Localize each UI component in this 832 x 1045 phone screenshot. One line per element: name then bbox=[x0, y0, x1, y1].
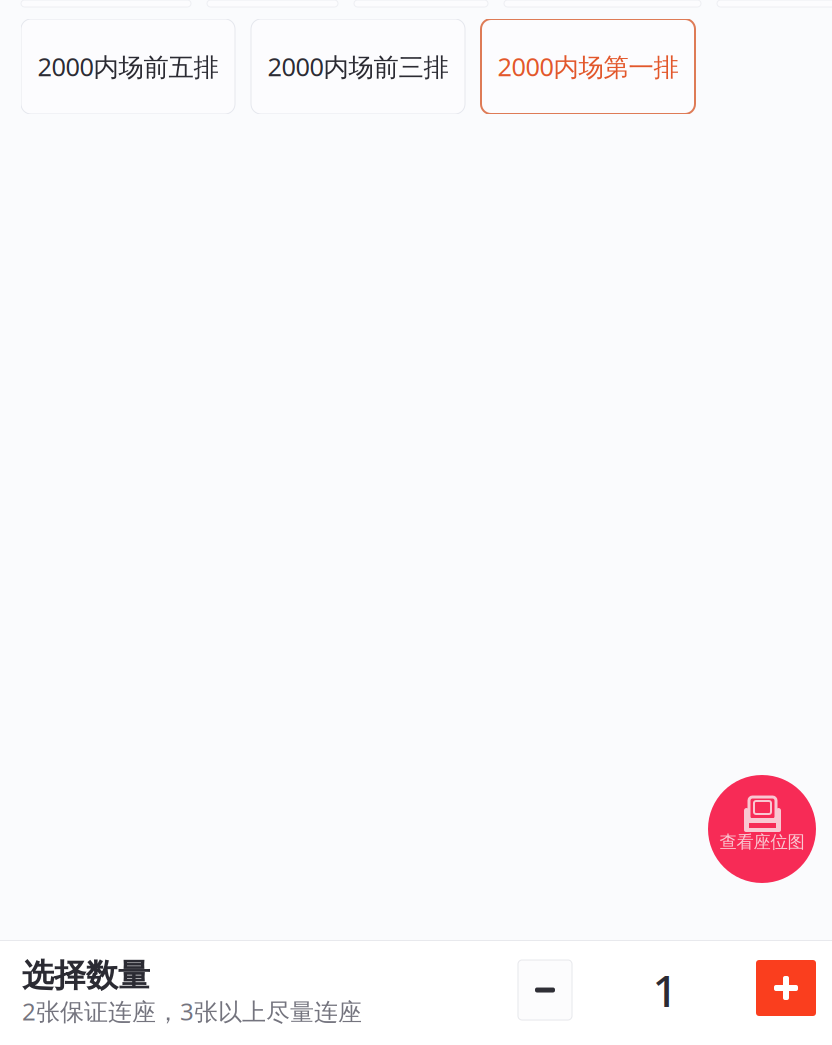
staticText: 2张保证连座，3张以上尽量连座 bbox=[22, 995, 362, 1027]
button[interactable]: 查看座位图 bbox=[708, 775, 816, 883]
button[interactable]: 减少数量 bbox=[518, 960, 572, 1020]
button[interactable]: 增加数量 bbox=[756, 960, 816, 1016]
button[interactable]: 2000内场前五排 bbox=[21, 19, 235, 114]
button[interactable]: 2000内场第一排 bbox=[481, 19, 695, 114]
button[interactable]: 2000内场前三排 bbox=[251, 19, 465, 114]
staticText: 1 bbox=[652, 961, 677, 1019]
staticText: 选择数量 bbox=[22, 956, 150, 995]
staticText: 2000内场第一排 bbox=[497, 50, 678, 83]
staticText: 2000内场前三排 bbox=[267, 50, 448, 83]
staticText: 2000内场前五排 bbox=[37, 50, 218, 83]
staticText: 查看座位图 bbox=[719, 831, 804, 853]
